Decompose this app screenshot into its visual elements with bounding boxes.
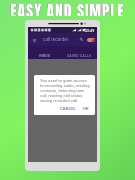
button[interactable]: Start recording: [87, 38, 95, 42]
staticText: INBOX: [39, 54, 51, 58]
button[interactable]: OK: [81, 105, 91, 112]
staticText: You need to grant access to recording au…: [40, 78, 90, 103]
button[interactable]: SAVED CALLS: [62, 46, 97, 59]
staticText: EASY AND SIMPLE: [10, 0, 125, 16]
staticText: 22:49: [85, 28, 95, 33]
staticText: OK: [83, 106, 89, 111]
staticText: SAVED CALLS: [67, 54, 92, 58]
button[interactable]: Search: [78, 36, 85, 43]
staticText: EASY AND SIMPLE: [10, 0, 125, 16]
staticText: EASY AND SIMPLE: [10, 0, 125, 16]
staticText: EASY AND SIMPLE: [10, 0, 125, 16]
button[interactable]: Open menu: [30, 36, 38, 44]
staticText: EASY AND SIMPLE: [10, 0, 125, 16]
button[interactable]: INBOX: [28, 46, 62, 59]
staticText: EASY AND SIMPLE: [10, 0, 125, 16]
staticText: EASY AND SIMPLE: [10, 0, 125, 16]
staticText: EASY AND SIMPLE: [10, 0, 125, 16]
staticText: EASY AND SIMPLE: [10, 0, 125, 16]
staticText: call recorder: [43, 37, 69, 42]
staticText: CANCEL: [60, 106, 76, 111]
button[interactable]: CANCEL: [58, 105, 78, 112]
